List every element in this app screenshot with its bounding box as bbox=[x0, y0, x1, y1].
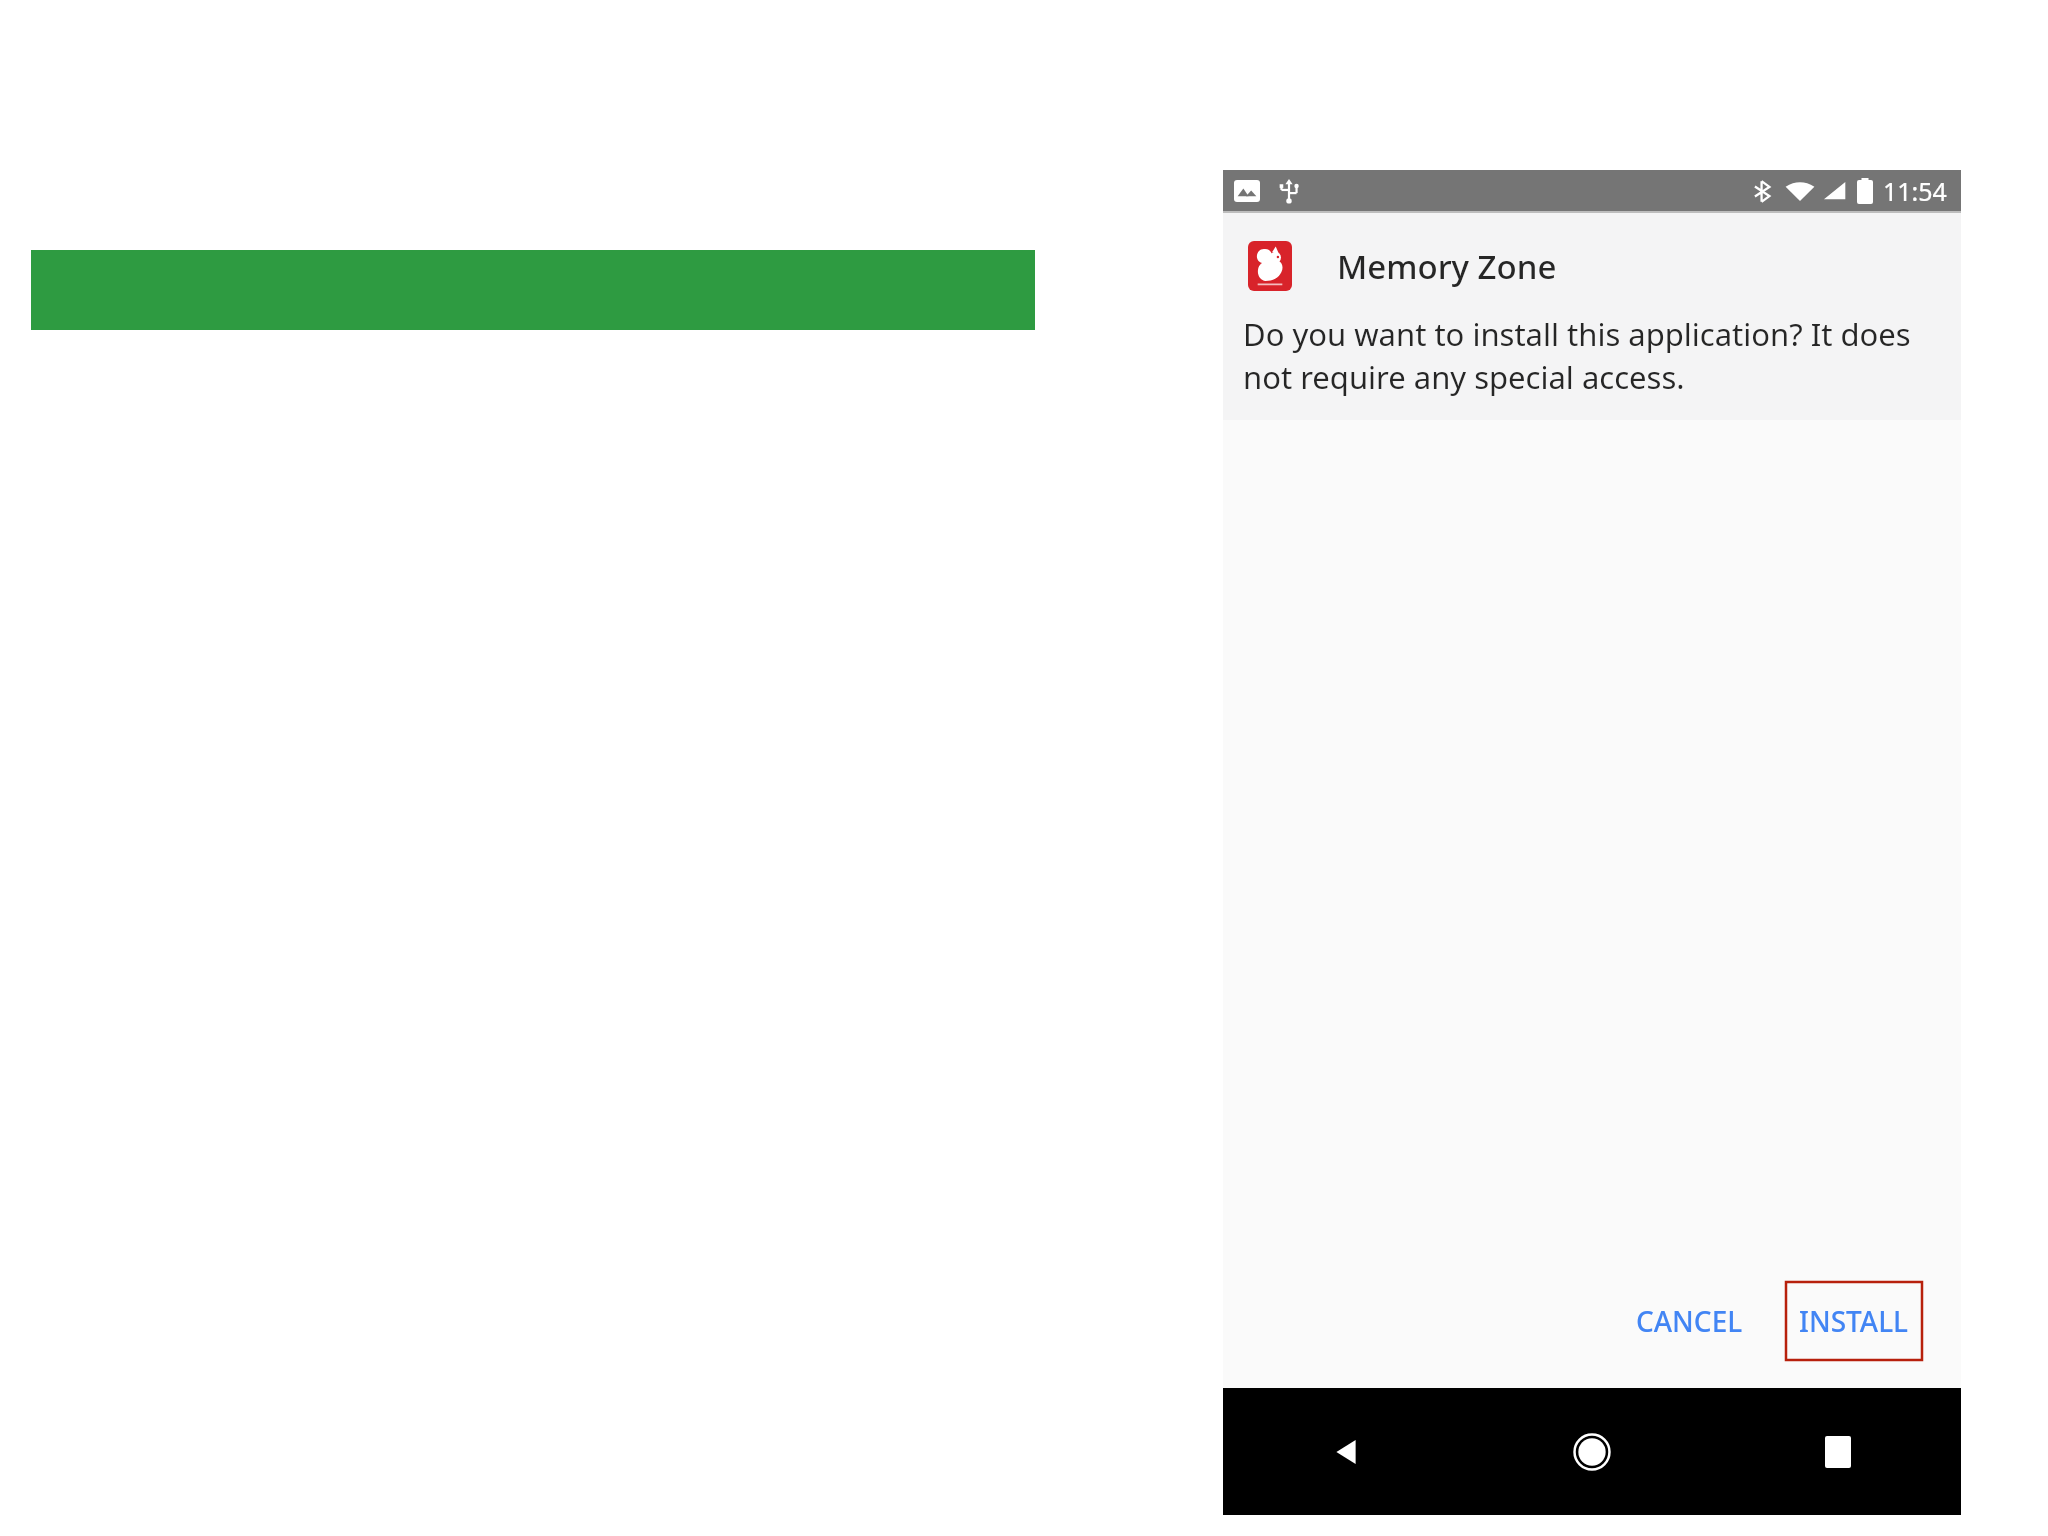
button[interactable]: Recent apps bbox=[1715, 1388, 1961, 1515]
staticText: INSTALL bbox=[1799, 1302, 1909, 1340]
button[interactable]: INSTALL bbox=[1786, 1282, 1922, 1360]
staticText: 11:54 bbox=[1883, 174, 1947, 208]
staticText: CANCEL bbox=[1636, 1302, 1743, 1340]
button[interactable]: Back bbox=[1223, 1388, 1469, 1515]
button[interactable]: Home bbox=[1469, 1388, 1715, 1515]
button[interactable]: CANCEL bbox=[1614, 1282, 1765, 1360]
other: Memory Zone app icon bbox=[1248, 241, 1292, 291]
staticText: Do you want to install this application?… bbox=[1243, 313, 1943, 398]
staticText: Memory Zone bbox=[1337, 244, 1557, 289]
